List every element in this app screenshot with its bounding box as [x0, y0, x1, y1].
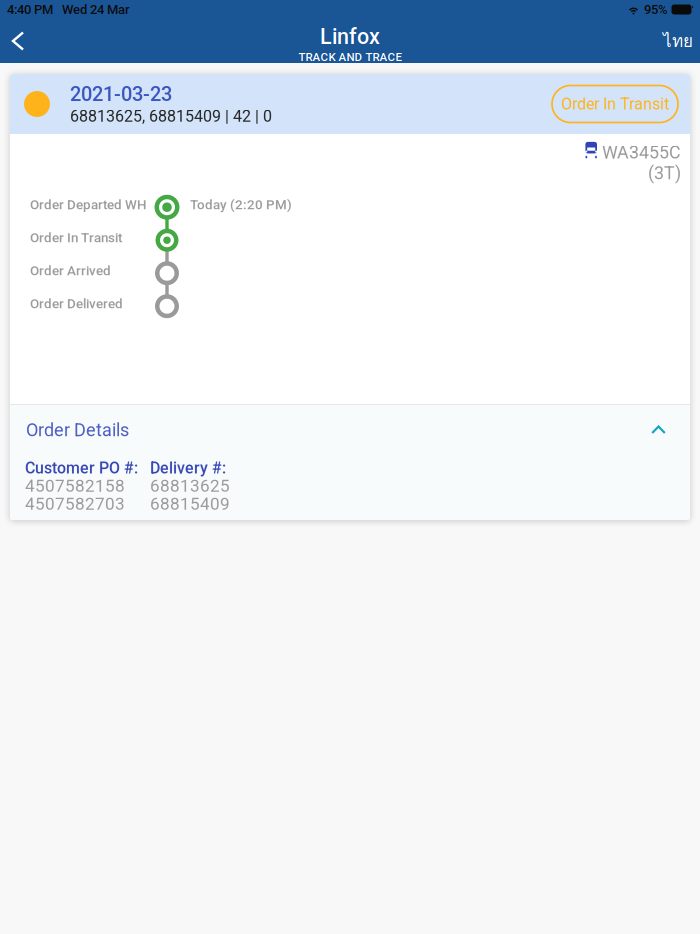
button[interactable]: Order Details: [10, 405, 690, 454]
staticText: Customer PO #:: [25, 459, 138, 477]
staticText: Order Arrived: [30, 263, 111, 279]
staticText: TRACK AND TRACE: [298, 50, 401, 64]
staticText: Today (2:20 PM): [190, 197, 292, 213]
staticText: 68815409: [150, 494, 230, 514]
staticText: Order Departed WH: [30, 197, 147, 213]
staticText: Wed 24 Mar: [53, 2, 130, 17]
staticText: Order Details: [26, 419, 129, 441]
staticText: 4507582703: [25, 494, 125, 514]
staticText: 68813625: [150, 476, 230, 496]
staticText: Linfox: [320, 24, 380, 49]
staticText: Order Delivered: [30, 296, 123, 312]
staticText: WA3455C: [602, 142, 681, 163]
staticText: (3T): [648, 163, 681, 184]
staticText: Order In Transit: [561, 95, 669, 113]
button[interactable]: Order In Transit: [552, 85, 678, 122]
staticText: 4:40 PM: [7, 2, 53, 17]
staticText: 4507582158: [25, 476, 125, 496]
staticText: ไทย: [663, 27, 693, 54]
button[interactable]: ไทย: [663, 19, 693, 62]
staticText: 95%: [644, 2, 668, 17]
button[interactable]: Back: [3, 19, 33, 62]
staticText: 2021-03-23: [70, 82, 172, 106]
staticText: 68813625, 68815409 | 42 | 0: [70, 107, 272, 126]
staticText: Delivery #:: [150, 459, 226, 477]
staticText: Order In Transit: [30, 230, 122, 246]
